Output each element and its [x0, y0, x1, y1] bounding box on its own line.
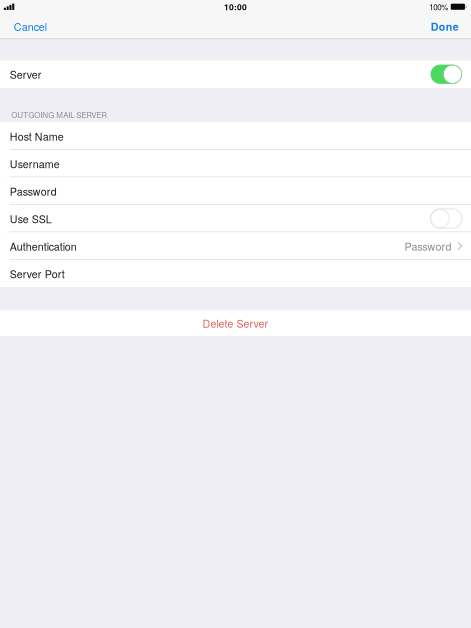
staticText: 10:00 [224, 1, 247, 13]
staticText: Delete Server [202, 316, 268, 331]
button[interactable]: Authentication [0, 232, 471, 260]
button[interactable]: Use SSL [0, 205, 471, 232]
button[interactable]: Server Port [0, 260, 471, 287]
button[interactable]: Password [0, 177, 471, 205]
staticText: Authentication [10, 238, 77, 254]
staticText: Server [10, 67, 42, 82]
staticText: Cancel [14, 19, 47, 34]
staticText: OUTGOING MAIL SERVER [11, 109, 107, 120]
button[interactable]: Delete Server [0, 310, 471, 336]
button[interactable]: Username [0, 150, 471, 177]
button[interactable]: Server [0, 60, 471, 88]
staticText: Password [405, 238, 452, 254]
button[interactable]: Done [418, 13, 471, 39]
staticText: Done [431, 19, 459, 34]
staticText: 100% [429, 1, 448, 12]
button[interactable]: Cancel [0, 13, 60, 39]
staticText: Username [10, 156, 60, 171]
staticText: Password [10, 183, 57, 199]
staticText: Use SSL [10, 211, 52, 226]
staticText: Host Name [10, 128, 64, 144]
button[interactable]: Host Name [0, 122, 471, 150]
staticText: Server Port [10, 266, 65, 281]
